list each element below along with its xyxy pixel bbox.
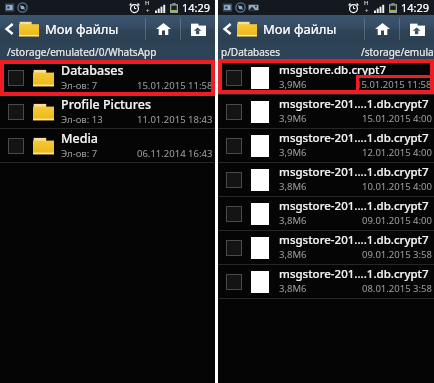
button[interactable]: msgstore-201....1.db.crypt7 — [218, 197, 434, 231]
staticText: 15.01.2015 11:58 — [356, 78, 432, 91]
staticText: 08.01.2015 3:58 — [362, 282, 432, 295]
staticText: 3,8M6 — [279, 282, 307, 295]
staticText: H — [364, 0, 369, 7]
staticText: msgstore-201....1.db.crypt7 — [279, 232, 429, 248]
staticText: 10.01.2015 4:00 — [362, 180, 432, 193]
staticText: 3,8M6 — [279, 214, 307, 227]
staticText: msgstore-201....1.db.crypt7 — [279, 266, 429, 282]
staticText: 14:29 — [401, 0, 430, 15]
staticText: 11.01.2015 18:43 — [137, 113, 213, 126]
staticText: 15.01.2015 11:58 — [137, 79, 213, 92]
staticText: 3,9M6 — [279, 146, 307, 159]
button[interactable]: Up one level — [181, 15, 215, 43]
staticText: 15.01.2015 4:00 — [362, 112, 432, 125]
staticText: + — [365, 7, 369, 14]
staticText: msgstore-201....1.db.crypt7 — [279, 164, 429, 180]
staticText: 3,8M6 — [279, 248, 307, 261]
staticText: 3,9M6 — [279, 78, 307, 91]
staticText: 12.01.2015 4:00 — [362, 146, 432, 159]
button[interactable]: Profile Pictures — [0, 95, 215, 129]
staticText: + — [146, 7, 150, 14]
button[interactable]: msgstore-201....1.db.crypt7 — [218, 163, 434, 197]
button[interactable]: Up one level — [400, 15, 434, 43]
staticText: 14:29 — [182, 0, 211, 15]
staticText: Мои файлы — [263, 20, 337, 38]
staticText: Эл-ов: 13 — [61, 113, 103, 126]
button[interactable]: msgstore-201....1.db.crypt7 — [218, 231, 434, 265]
staticText: /storage/emula — [361, 45, 434, 59]
staticText: msgstore-201....1.db.crypt7 — [279, 130, 429, 146]
button[interactable]: Мои файлы — [0, 15, 145, 43]
staticText: Profile Pictures — [61, 96, 151, 113]
button[interactable]: Media — [0, 129, 215, 163]
button[interactable]: Home — [365, 15, 399, 43]
staticText: 3,9M6 — [279, 112, 307, 125]
staticText: /storage/emulated/0/WhatsApp — [7, 45, 157, 59]
staticText: 09.01.2015 3:58 — [362, 248, 432, 261]
staticText: Мои файлы — [45, 20, 119, 38]
staticText: msgstore-201....1.db.crypt7 — [279, 198, 429, 214]
staticText: msgstore.db.crypt7 — [279, 62, 387, 78]
button[interactable]: msgstore-201....1.db.crypt7 — [218, 265, 434, 299]
button[interactable]: msgstore.db.crypt7 — [218, 61, 434, 95]
staticText: Media — [61, 130, 98, 147]
button[interactable]: Databases — [0, 61, 215, 95]
button[interactable]: Home — [146, 15, 180, 43]
staticText: msgstore-201....1.db.crypt7 — [279, 96, 429, 112]
staticText: Databases — [61, 62, 124, 79]
staticText: Эл-ов: 7 — [61, 147, 98, 160]
staticText: 09.01.2015 4:00 — [362, 214, 432, 227]
button[interactable]: msgstore-201....1.db.crypt7 — [218, 95, 434, 129]
staticText: H — [145, 0, 150, 7]
staticText: p/Databases — [221, 45, 280, 59]
staticText: Эл-ов: 7 — [61, 79, 98, 92]
staticText: 06.11.2014 16:43 — [137, 147, 213, 160]
button[interactable]: msgstore-201....1.db.crypt7 — [218, 129, 434, 163]
button[interactable]: Мои файлы — [218, 15, 364, 43]
staticText: 3,8M6 — [279, 180, 307, 193]
